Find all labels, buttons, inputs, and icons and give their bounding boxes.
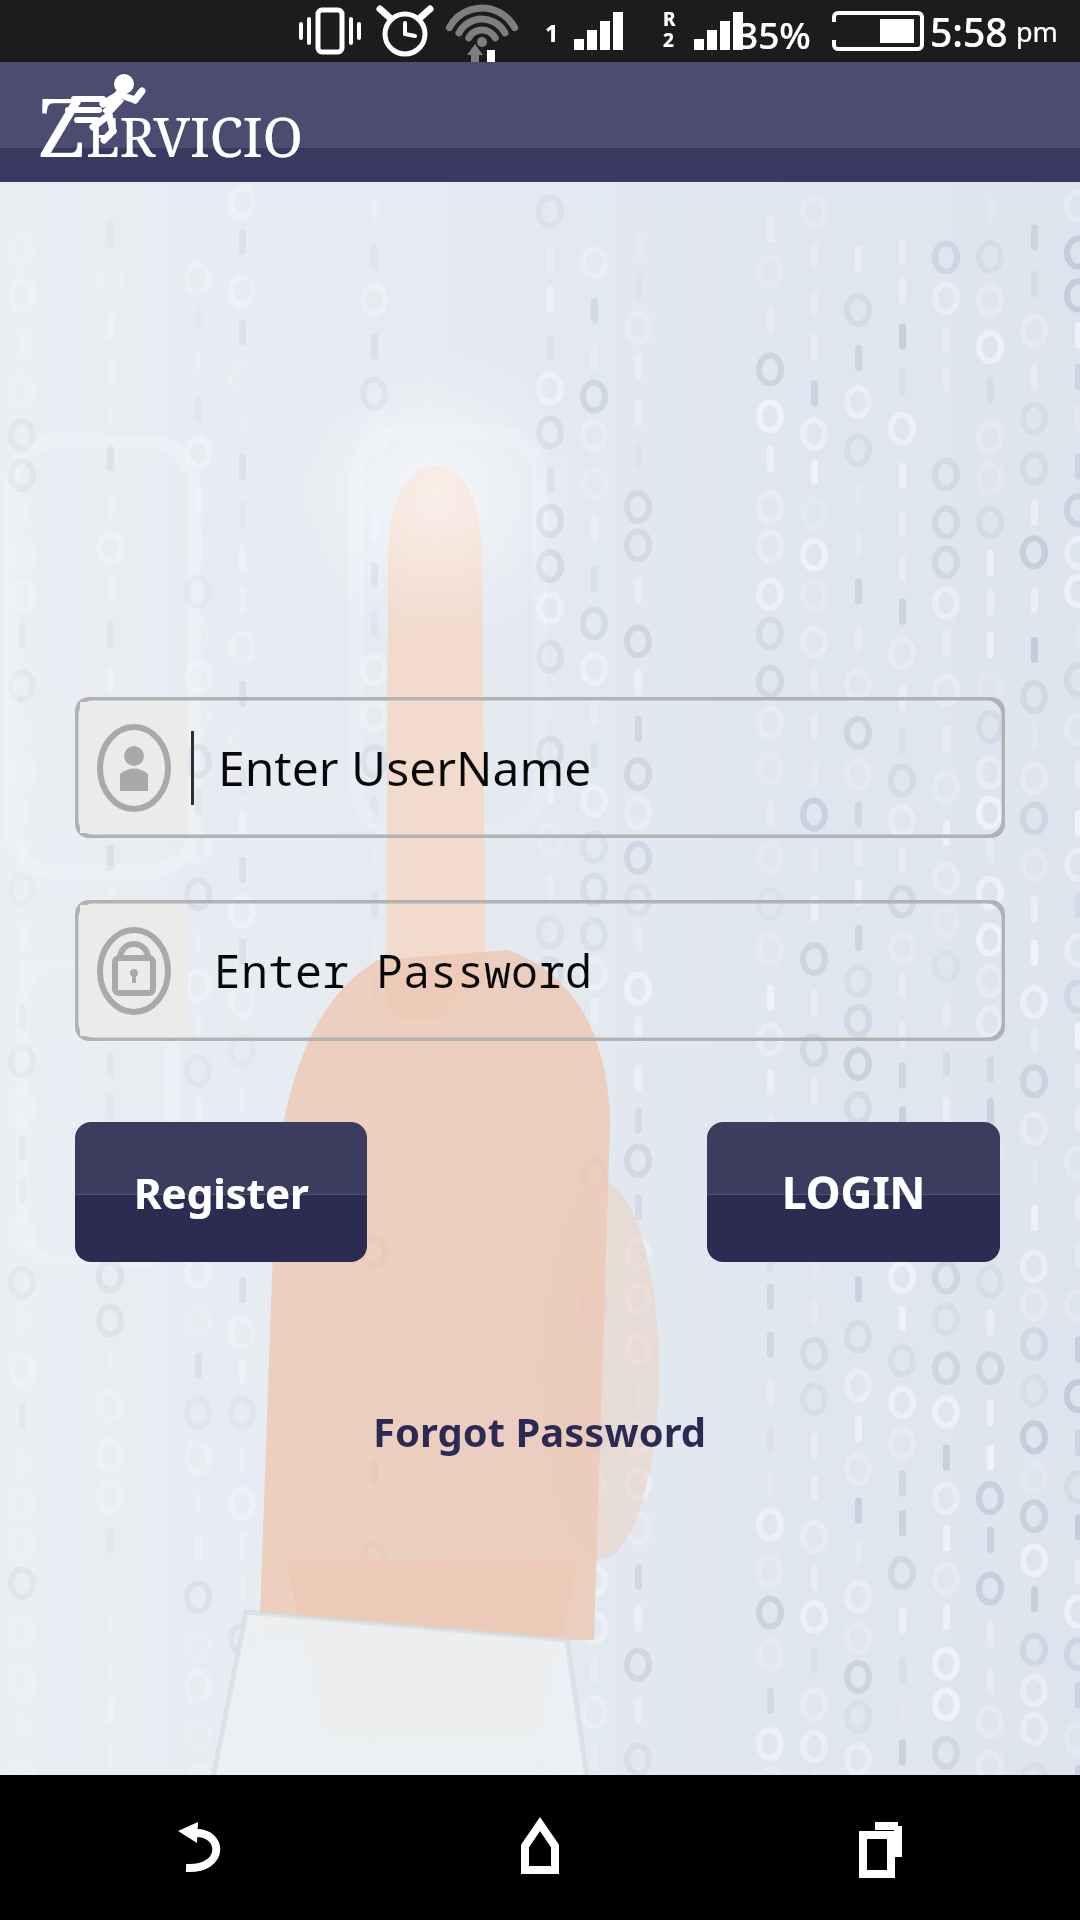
staticText: LOGIN — [782, 1162, 926, 1222]
button[interactable]: Back — [140, 1788, 260, 1908]
staticText: 2 — [663, 27, 674, 53]
button[interactable]: User name — [75, 697, 1005, 838]
staticText: R — [663, 6, 676, 32]
staticText: Enter Password — [214, 940, 593, 1001]
staticText: 1 — [545, 16, 559, 49]
staticText: 5:58 — [930, 5, 1008, 58]
button[interactable]: Home — [480, 1788, 600, 1908]
button[interactable]: LOGIN — [707, 1122, 1000, 1262]
staticText: ERVICIO — [86, 99, 303, 173]
button[interactable]: Password — [75, 900, 1005, 1041]
button[interactable]: Register — [75, 1122, 367, 1262]
button[interactable]: Recent apps — [820, 1788, 940, 1908]
staticText: pm — [1016, 13, 1058, 50]
staticText: 35% — [737, 9, 811, 59]
staticText: Enter UserName — [218, 735, 592, 800]
staticText: Forgot Password — [373, 1404, 707, 1458]
staticText: Z — [38, 71, 86, 180]
staticText: Register — [134, 1164, 309, 1221]
button[interactable]: Forgot Password — [361, 1398, 719, 1464]
